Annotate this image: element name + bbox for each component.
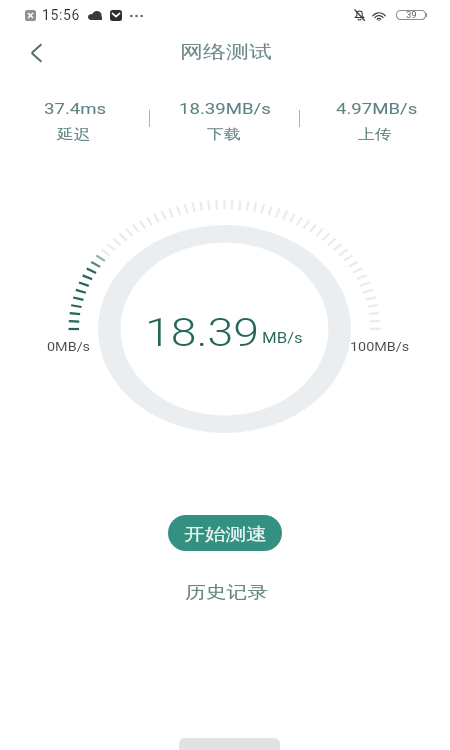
staticText: 延迟	[57, 126, 91, 144]
staticText: 100MB/s	[350, 340, 410, 354]
button[interactable]: 历史记录	[175, 575, 275, 605]
staticText: 15:56	[42, 7, 80, 23]
staticText: 开始测速	[184, 524, 267, 545]
staticText: 下载	[207, 126, 241, 144]
staticText: 网络测试	[180, 41, 272, 64]
button[interactable]: Back	[14, 30, 60, 76]
staticText: 18.39MB/s	[179, 100, 271, 118]
staticText: 历史记录	[185, 582, 268, 603]
staticText: 0MB/s	[47, 340, 90, 354]
staticText: 39	[406, 9, 417, 20]
staticText: 上传	[358, 126, 392, 144]
staticText: 4.97MB/s	[336, 100, 418, 118]
button[interactable]: 开始测速	[168, 515, 282, 551]
staticText: 18.39	[145, 310, 259, 356]
staticText: 37.4ms	[44, 100, 106, 118]
staticText: MB/s	[262, 330, 303, 346]
